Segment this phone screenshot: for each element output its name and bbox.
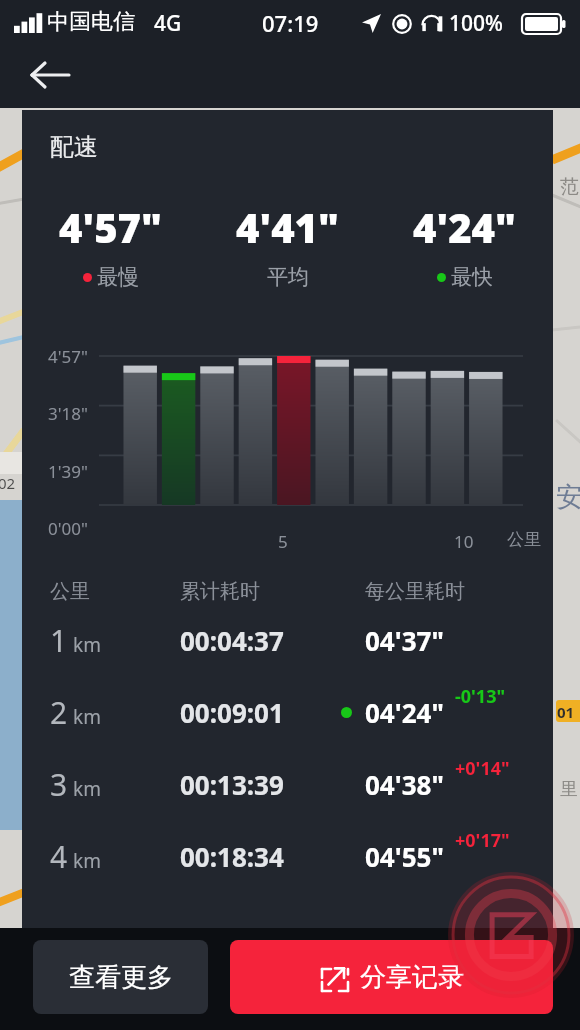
staticText: 4'57": [48, 345, 88, 368]
staticText: km: [73, 776, 101, 802]
staticText: 1: [50, 620, 68, 661]
staticText: 1'39": [48, 460, 88, 483]
staticText: 10: [454, 530, 474, 553]
staticText: 04'24": [365, 695, 444, 730]
staticText: 4G: [154, 9, 182, 38]
staticText: 安: [556, 480, 580, 514]
staticText: km: [73, 848, 101, 874]
staticText: 分享记录: [360, 961, 464, 994]
staticText: 4'24": [413, 200, 516, 254]
staticText: 07:19: [262, 8, 319, 38]
staticText: 4'41": [236, 200, 339, 254]
staticText: 04'55": [365, 839, 444, 874]
staticText: 100%: [449, 9, 503, 38]
button[interactable]: 4: [22, 820, 553, 892]
staticText: 每公里耗时: [365, 579, 465, 604]
staticText: 公里: [50, 579, 180, 604]
staticText: 公里: [507, 529, 541, 550]
staticText: 2: [50, 692, 68, 733]
button[interactable]: 3: [22, 748, 553, 820]
staticText: -0'13": [455, 684, 506, 709]
button[interactable]: 2: [22, 676, 553, 748]
button[interactable]: 查看更多: [33, 940, 208, 1014]
staticText: 查看更多: [69, 961, 173, 994]
staticText: 3'18": [48, 402, 88, 425]
staticText: 4: [50, 836, 68, 877]
staticText: 00:18:34: [180, 839, 365, 874]
staticText: 4'57": [59, 200, 162, 254]
staticText: 04'37": [365, 623, 444, 658]
button[interactable]: Back: [18, 46, 82, 104]
button[interactable]: 1: [22, 604, 553, 676]
staticText: 最快: [451, 264, 493, 290]
staticText: 5: [278, 530, 288, 553]
staticText: 0'00": [48, 517, 88, 540]
staticText: 配速: [50, 132, 98, 162]
staticText: 00:09:01: [180, 695, 365, 730]
staticText: 中国电信: [47, 8, 135, 36]
staticText: 平均: [267, 264, 309, 290]
other: Share: [320, 963, 350, 993]
button[interactable]: Share: [230, 940, 553, 1014]
staticText: 02: [0, 473, 16, 493]
staticText: +0'14": [455, 756, 510, 781]
staticText: 里: [560, 778, 578, 801]
staticText: 3: [50, 764, 68, 805]
staticText: +0'17": [455, 828, 510, 853]
staticText: 最慢: [97, 264, 139, 290]
staticText: km: [73, 632, 101, 658]
staticText: 00:04:37: [180, 623, 365, 658]
staticText: 累计耗时: [180, 579, 365, 604]
staticText: km: [73, 704, 101, 730]
staticText: 01: [557, 702, 575, 722]
staticText: 范: [560, 175, 579, 199]
staticText: 00:13:39: [180, 767, 365, 802]
staticText: 04'38": [365, 767, 444, 802]
